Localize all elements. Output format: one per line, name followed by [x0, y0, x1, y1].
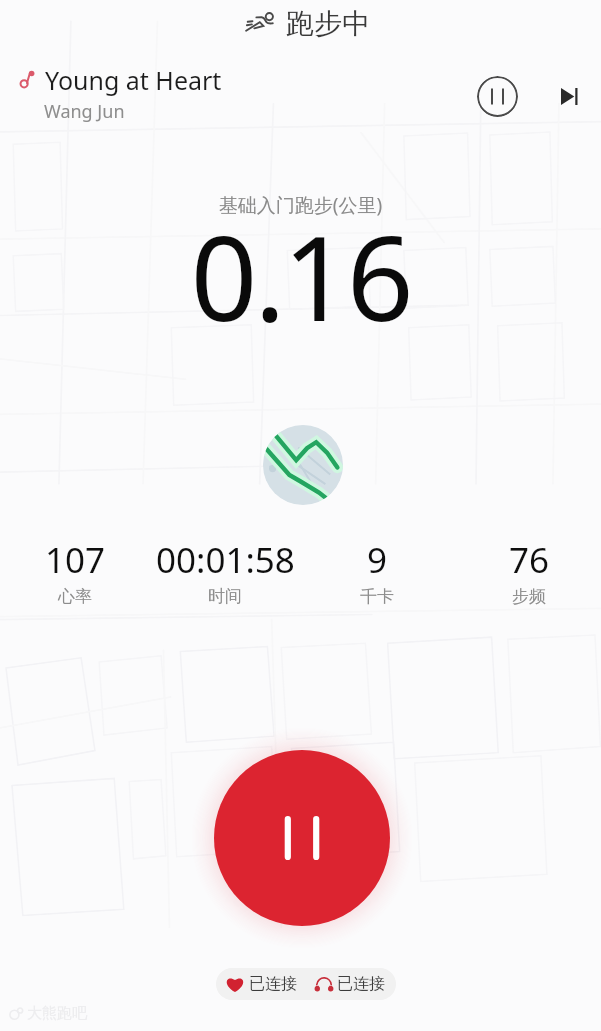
staticText: 0.16: [0, 196, 601, 355]
staticText: 76: [509, 536, 550, 584]
staticText: 已连接: [249, 974, 297, 994]
button[interactable]: 已连接: [225, 974, 297, 994]
button[interactable]: Next track: [553, 80, 585, 112]
staticText: 跑步中: [286, 6, 370, 41]
staticText: 心率: [58, 586, 92, 607]
staticText: 大熊跑吧: [27, 1004, 87, 1023]
staticText: 9: [367, 536, 388, 584]
button[interactable]: 76: [444, 536, 601, 607]
staticText: 时间: [208, 586, 242, 607]
staticText: 步频: [512, 586, 546, 607]
staticText: 00:01:58: [156, 536, 295, 584]
button[interactable]: 00:01:58: [140, 536, 310, 607]
button[interactable]: Pause workout: [214, 750, 390, 926]
staticText: Wang Jun: [44, 99, 125, 124]
button[interactable]: 107: [0, 536, 160, 607]
button[interactable]: 9: [292, 536, 462, 607]
staticText: 已连接: [337, 974, 385, 994]
staticText: 107: [45, 536, 106, 584]
button[interactable]: 已连接: [314, 974, 385, 994]
staticText: 基础入门跑步(公里): [0, 192, 601, 218]
staticText: 千卡: [360, 586, 394, 607]
staticText: Young at Heart: [45, 63, 222, 97]
button[interactable]: Pause music: [477, 76, 518, 117]
button[interactable]: Route map: [263, 425, 343, 505]
